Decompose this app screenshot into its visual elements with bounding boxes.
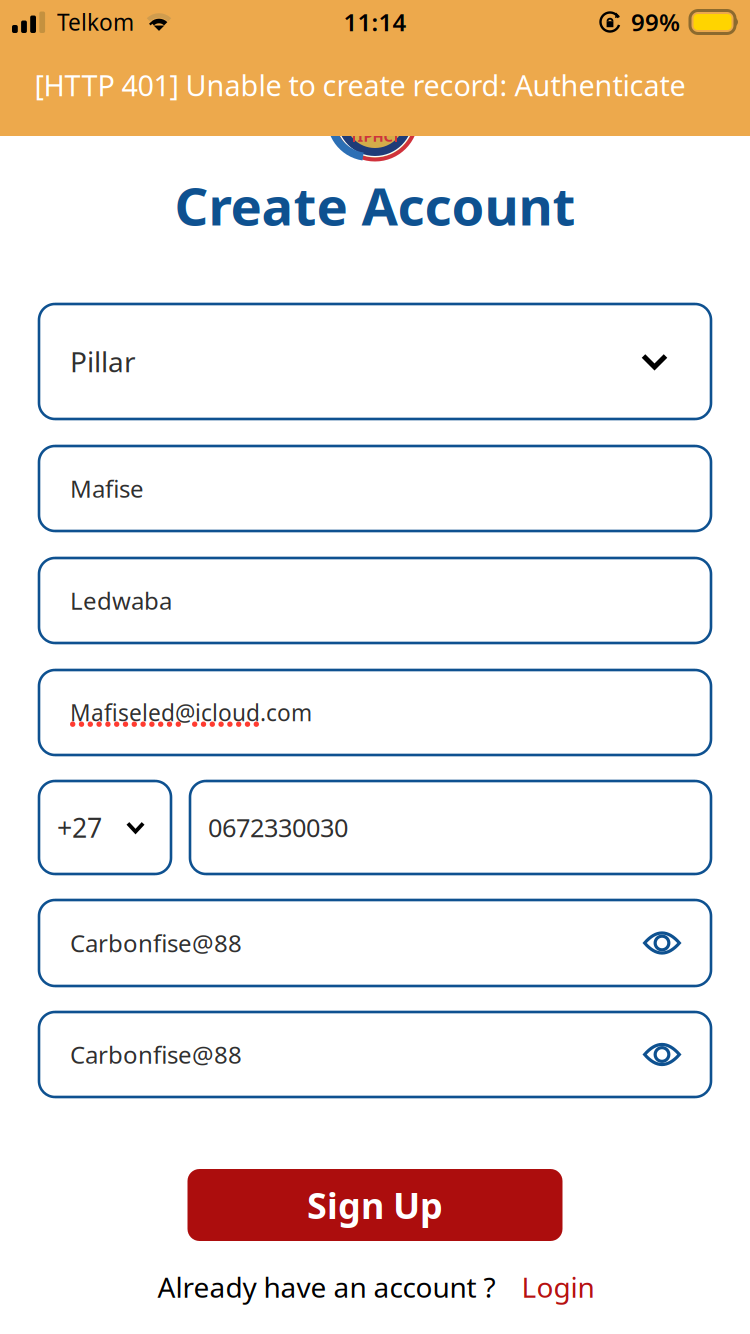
staticText: Pillar — [70, 343, 136, 380]
button[interactable]: Show confirm password — [634, 1034, 690, 1075]
staticText: IPHC — [357, 126, 392, 146]
staticText: 11:14 — [343, 6, 406, 38]
staticText: Already have an account ? — [157, 1268, 495, 1306]
staticText: +27 — [57, 810, 102, 845]
staticText: Mafise — [70, 473, 144, 504]
staticText: Mafiseled@icloud.com — [70, 697, 312, 728]
staticText: Carbonfise@88 — [70, 927, 242, 959]
staticText: [HTTP 401] Unable to create record: Auth… — [34, 65, 685, 105]
staticText: Carbonfise@88 — [70, 1039, 242, 1070]
button[interactable]: +27 — [39, 781, 171, 874]
staticText: 99% — [631, 6, 680, 38]
staticText: Login — [521, 1268, 594, 1306]
staticText: Ledwaba — [70, 585, 172, 616]
staticText: Sign Up — [307, 1181, 443, 1229]
staticText: 0672330030 — [208, 811, 348, 844]
staticText: Telkom — [57, 7, 134, 37]
button[interactable]: Show password — [634, 923, 690, 963]
staticText: Create Account — [174, 169, 575, 241]
button[interactable]: Login — [521, 1268, 594, 1306]
button[interactable]: Sign Up — [187, 1169, 562, 1241]
button[interactable]: Pillar — [39, 304, 711, 419]
